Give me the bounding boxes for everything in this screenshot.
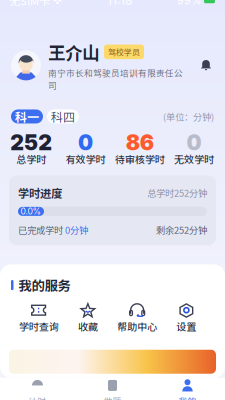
button[interactable]: 帮助中心 [112,303,162,331]
staticText: (单位：分钟) [163,110,214,123]
button[interactable]: 活动横幅 [9,350,216,374]
staticText: 收藏 [78,319,98,333]
staticText: 86 [126,130,154,155]
staticText: 0 [186,130,201,155]
staticText: 王介山 [48,39,99,64]
staticText: 我的 [178,394,196,400]
staticText: 做题 [103,394,121,400]
button[interactable]: 收藏 [63,303,112,331]
staticText: 0分钟 [65,223,88,236]
button[interactable]: 科四 [47,109,79,123]
staticText: 无效学时 [174,152,214,166]
staticText: 0 [78,130,93,155]
staticText: 科四 [51,108,75,125]
button[interactable]: 计时 [0,378,75,400]
staticText: 计时 [28,394,46,400]
staticText: 剩余252分钟 [156,223,207,236]
button[interactable]: 科一 [11,109,43,123]
staticText: 总学时 [16,152,46,166]
staticText: 无SIM卡 [9,0,50,8]
staticText: 南宁市长和驾驶员培训有限责任公司 [48,66,183,91]
staticText: 帮助中心 [117,319,157,333]
staticText: 待审核学时 [115,152,165,166]
staticText: 有效学时 [65,152,105,166]
staticText: 学时进度 [18,184,62,201]
staticText: 已完成学时 [18,223,65,236]
button[interactable]: 学时查询 [14,303,63,331]
staticText: 11:18 [107,0,132,7]
button[interactable]: 通知 [198,57,214,73]
staticText: 科一 [15,108,39,125]
staticText: 驾校学员 [108,46,140,58]
staticText: 设置 [176,319,196,333]
staticText: 我的服务 [18,275,70,295]
staticText: 99% [177,0,201,7]
button[interactable]: 我的 [150,378,225,400]
button[interactable]: 设置 [162,303,211,331]
staticText: 学时查询 [19,319,59,333]
staticText: 252 [10,130,52,155]
staticText: 0.0% [20,206,41,217]
staticText: 总学时252分钟 [147,186,207,199]
button[interactable]: 做题 [75,378,150,400]
